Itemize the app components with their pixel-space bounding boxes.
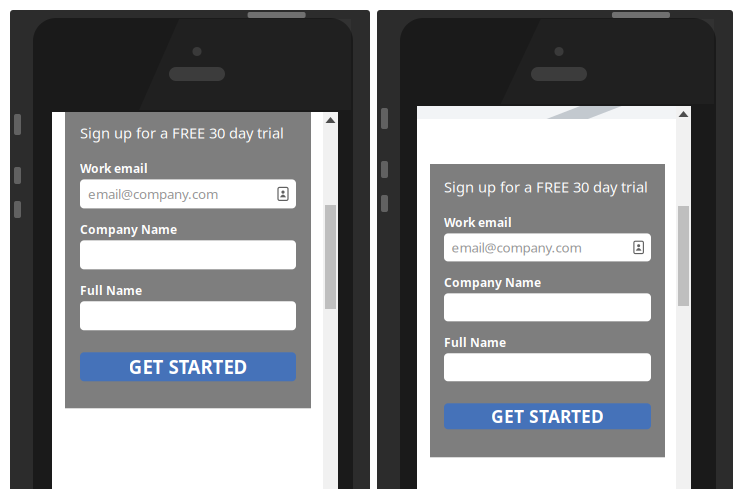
staticText: GET STARTED <box>491 405 604 428</box>
staticText: GET STARTED <box>128 354 247 379</box>
button[interactable]: GET STARTED <box>444 403 651 429</box>
staticText: Company Name <box>80 221 177 237</box>
staticText: Work email <box>444 214 512 230</box>
staticText: email@company.com <box>88 185 218 203</box>
staticText: Full Name <box>80 282 142 298</box>
staticText: Sign up for a FREE 30 day trial <box>80 123 284 142</box>
button[interactable]: GET STARTED <box>80 352 296 381</box>
staticText: email@company.com <box>452 239 582 256</box>
staticText: Company Name <box>444 274 541 290</box>
staticText: Work email <box>80 160 148 176</box>
staticText: Full Name <box>444 334 506 350</box>
staticText: Sign up for a FREE 30 day trial <box>444 177 648 196</box>
